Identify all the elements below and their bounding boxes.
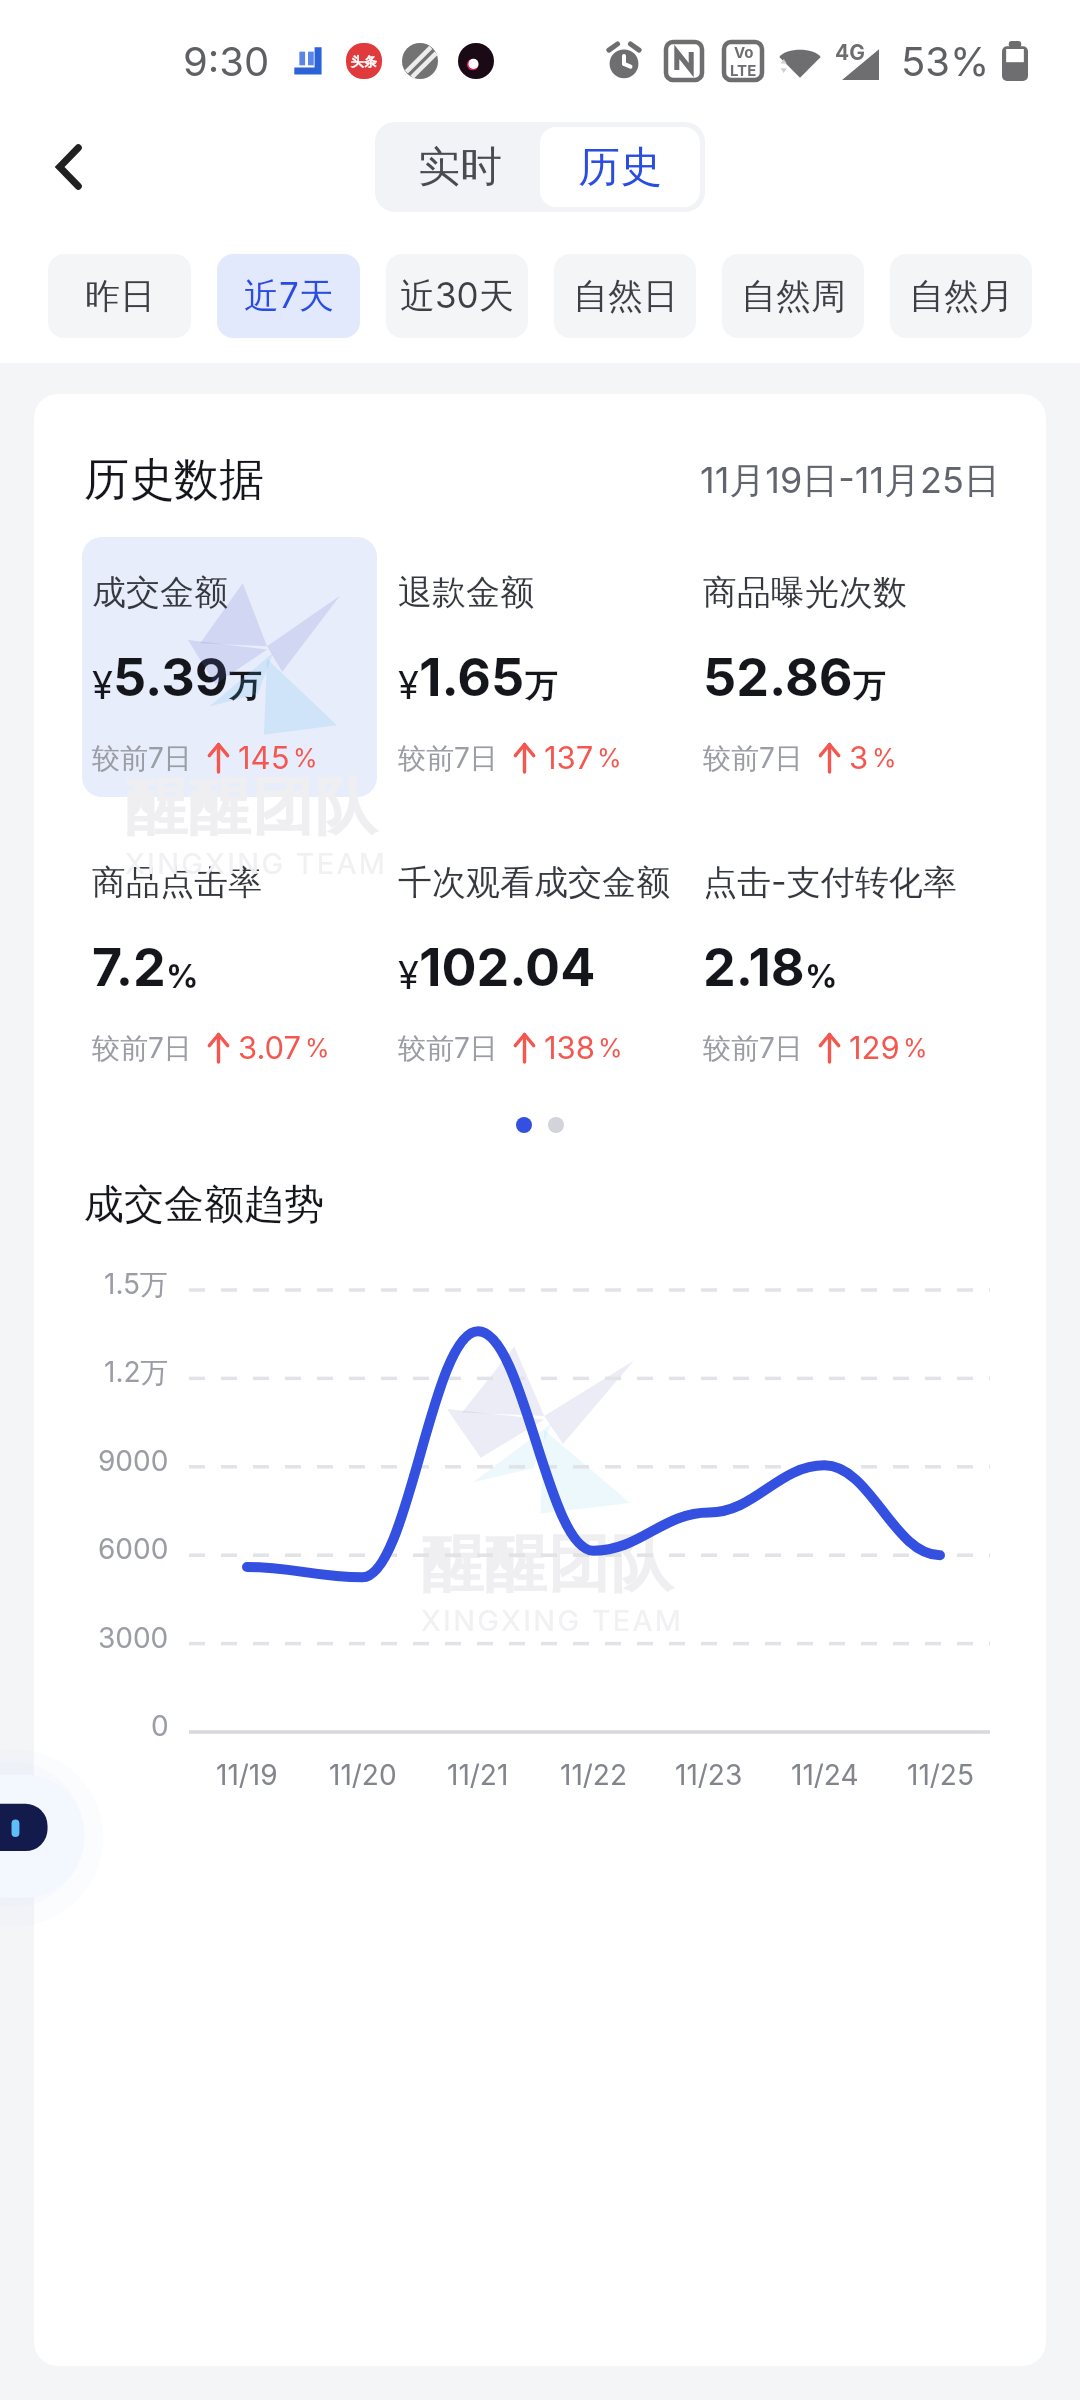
staticText: 129 xyxy=(849,1029,900,1067)
staticText: ¥ xyxy=(398,662,419,708)
staticText: 醒醒团队 xyxy=(125,768,377,846)
staticText: 11月19日-11月25日 xyxy=(700,458,1000,504)
button[interactable]: 昨日 xyxy=(48,254,191,338)
button[interactable]: 自然周 xyxy=(722,254,864,338)
staticText: 4G xyxy=(835,40,865,65)
button[interactable]: 自然月 xyxy=(890,254,1032,338)
staticText: 11/24 xyxy=(791,1758,859,1792)
staticText: % xyxy=(305,1033,330,1063)
staticText: 145 xyxy=(238,739,290,777)
staticText: XINGXING TEAM xyxy=(125,846,388,881)
staticText: 3 xyxy=(849,739,869,777)
staticText: % xyxy=(805,957,838,996)
staticText: 退款金额 xyxy=(398,571,534,614)
staticText: 9000 xyxy=(98,1444,169,1478)
button[interactable]: 实时 xyxy=(380,127,540,207)
button[interactable]: 近7天 xyxy=(217,254,360,338)
staticText: 较前7日 xyxy=(92,741,192,776)
button[interactable]: 自然日 xyxy=(554,254,696,338)
staticText: 11/23 xyxy=(675,1758,743,1792)
staticText: 万 xyxy=(229,666,261,706)
button[interactable]: 历史 xyxy=(540,127,700,207)
staticText: 9:30 xyxy=(183,37,270,85)
staticText: 万 xyxy=(853,666,885,706)
staticText: 较前7日 xyxy=(92,1031,192,1066)
staticText: 138 xyxy=(544,1029,595,1067)
button[interactable]: 千次观看成交金额 xyxy=(388,827,682,1087)
staticText: 11/25 xyxy=(907,1758,974,1792)
staticText: 自然月 xyxy=(909,274,1014,318)
staticText: LTE xyxy=(730,61,757,79)
staticText: % xyxy=(872,743,897,773)
staticText: 2.18 xyxy=(703,936,805,999)
staticText: 商品曝光次数 xyxy=(703,571,907,614)
staticText: 自然周 xyxy=(741,274,846,318)
staticText: 自然日 xyxy=(573,274,678,318)
staticText: % xyxy=(903,1033,928,1063)
staticText: 较前7日 xyxy=(398,1031,498,1066)
staticText: 历史 xyxy=(578,141,662,194)
button[interactable]: 成交金额 xyxy=(82,537,377,797)
staticText: 成交金额趋势 xyxy=(84,1179,324,1229)
button[interactable]: Back xyxy=(26,123,114,211)
staticText: 1.65 xyxy=(419,646,525,709)
button[interactable]: 退款金额 xyxy=(388,537,682,797)
staticText: 点击-支付转化率 xyxy=(703,861,957,904)
staticText: % xyxy=(597,743,622,773)
staticText: 6000 xyxy=(98,1532,169,1566)
staticText: 102.04 xyxy=(419,936,596,999)
staticText: 52.86 xyxy=(703,646,853,709)
staticText: 11/19 xyxy=(216,1758,278,1792)
staticText: 近7天 xyxy=(244,274,334,318)
staticText: 11/20 xyxy=(329,1758,397,1792)
staticText: 近30天 xyxy=(400,274,514,318)
button[interactable]: 近30天 xyxy=(386,254,528,338)
staticText: % xyxy=(598,1033,623,1063)
staticText: 7.2 xyxy=(92,936,166,999)
staticText: 3.07 xyxy=(238,1029,302,1067)
staticText: 1.2万 xyxy=(104,1355,169,1390)
staticText: 较前7日 xyxy=(398,741,498,776)
staticText: XINGXING TEAM xyxy=(421,1603,684,1638)
staticText: 11/22 xyxy=(560,1758,628,1792)
staticText: 千次观看成交金额 xyxy=(398,861,670,904)
staticText: % xyxy=(166,957,199,996)
staticText: 53% xyxy=(901,37,990,85)
button[interactable]: 商品点击率 xyxy=(82,827,377,1087)
staticText: 万 xyxy=(525,666,557,706)
staticText: 成交金额 xyxy=(92,571,228,614)
staticText: 3000 xyxy=(98,1621,169,1655)
staticText: 较前7日 xyxy=(703,741,803,776)
staticText: 醒醒团队 xyxy=(421,1525,673,1603)
staticText: 11/21 xyxy=(447,1758,509,1792)
button[interactable]: 商品曝光次数 xyxy=(693,537,987,797)
staticText: 头条 xyxy=(351,53,377,69)
staticText: 137 xyxy=(544,739,594,777)
staticText: 0 xyxy=(151,1709,169,1743)
staticText: Vo xyxy=(734,43,754,61)
staticText: 5.39 xyxy=(113,646,229,709)
staticText: 昨日 xyxy=(85,274,155,318)
staticText: 实时 xyxy=(418,141,502,194)
staticText: 较前7日 xyxy=(703,1031,803,1066)
staticText: 商品点击率 xyxy=(92,861,262,904)
button[interactable]: 点击-支付转化率 xyxy=(693,827,987,1087)
staticText: 1.5万 xyxy=(104,1267,169,1302)
staticText: % xyxy=(293,743,318,773)
staticText: 历史数据 xyxy=(84,452,264,509)
staticText: ¥ xyxy=(92,662,113,708)
staticText: ¥ xyxy=(398,952,419,998)
